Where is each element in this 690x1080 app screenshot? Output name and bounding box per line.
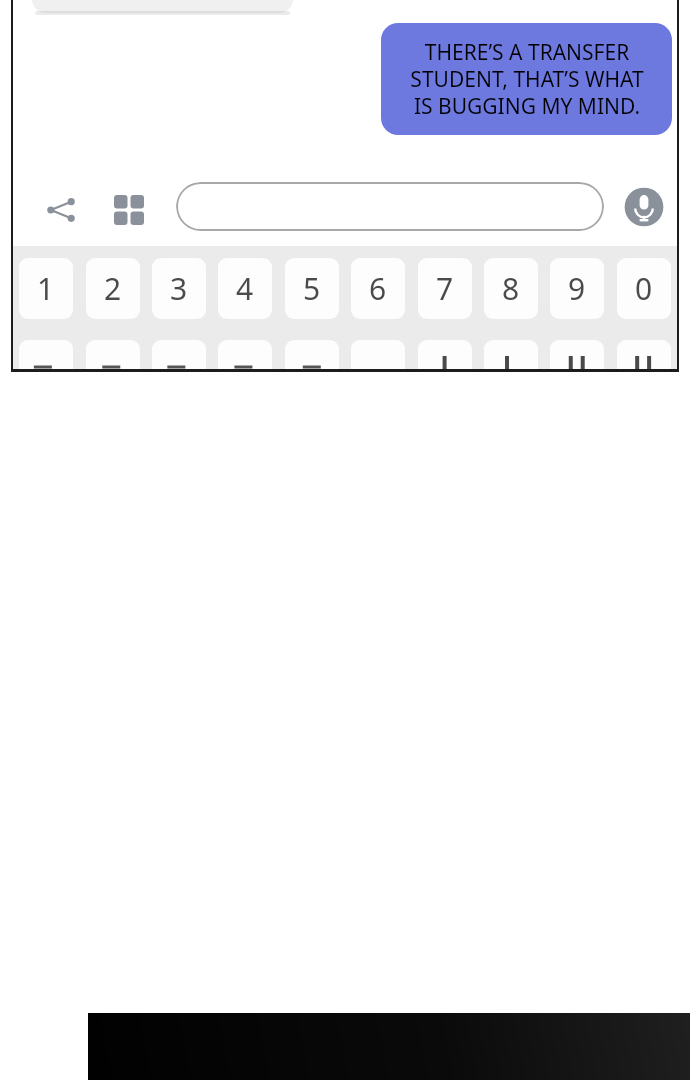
button[interactable]: 5 [285,258,339,319]
button[interactable] [351,340,405,370]
button[interactable]: Apps [103,184,155,236]
staticText: 7 [436,268,454,309]
staticText: 9 [568,268,586,309]
button[interactable] [484,340,538,370]
button[interactable]: 4 [218,258,272,319]
button[interactable]: Share [35,184,87,236]
button[interactable] [19,340,73,370]
button[interactable]: 6 [351,258,405,319]
staticText: 8 [502,268,520,309]
button[interactable] [617,340,671,370]
button[interactable] [32,0,293,13]
button[interactable]: Voice input [620,183,668,231]
button[interactable]: 3 [152,258,206,319]
button[interactable]: 9 [550,258,604,319]
button[interactable]: THERE’S A TRANSFER STUDENT, THAT’S WHAT … [381,23,672,135]
button[interactable] [550,340,604,370]
button[interactable] [218,340,272,370]
staticText: THERE’S A TRANSFER STUDENT, THAT’S WHAT … [410,38,644,120]
button[interactable] [176,182,604,231]
staticText: 1 [37,268,55,309]
button[interactable] [86,340,140,370]
staticText: 4 [236,268,254,309]
button[interactable]: 7 [418,258,472,319]
staticText: 2 [104,268,122,309]
button[interactable] [285,340,339,370]
staticText: 3 [170,268,188,309]
button[interactable]: 2 [86,258,140,319]
button[interactable]: 0 [617,258,671,319]
button[interactable] [418,340,472,370]
button[interactable] [152,340,206,370]
button[interactable]: 1 [19,258,73,319]
staticText: 0 [635,268,653,309]
staticText: 5 [303,268,321,309]
button[interactable]: 8 [484,258,538,319]
staticText: 6 [369,268,387,309]
